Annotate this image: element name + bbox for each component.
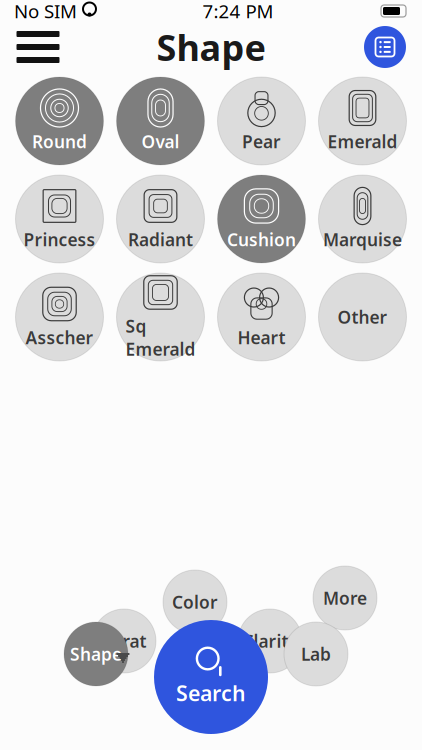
button[interactable]: Asscher (15, 273, 103, 361)
button[interactable]: Sq Emerald (116, 273, 204, 361)
button[interactable]: Color (163, 570, 227, 634)
staticText: Carat (101, 629, 146, 652)
button[interactable]: Emerald (318, 77, 406, 165)
button[interactable]: Oval (116, 77, 204, 165)
staticText: Search (176, 679, 246, 707)
button[interactable]: Shape (64, 622, 128, 686)
button[interactable]: Menu (14, 27, 62, 67)
staticText: Pear (242, 130, 281, 153)
staticText: Other (337, 305, 387, 328)
staticText: More (323, 586, 367, 609)
staticText: No SIM (14, 0, 77, 23)
button[interactable]: Carat (92, 609, 156, 673)
staticText: Shape (70, 642, 122, 665)
staticText: Cushion (227, 228, 296, 251)
staticText: Clarity (242, 629, 297, 652)
button[interactable]: Other (318, 273, 406, 361)
button[interactable]: Princess (15, 175, 103, 263)
staticText: Asscher (25, 326, 93, 349)
staticText: 7:24 PM (202, 0, 273, 23)
staticText: Heart (237, 326, 285, 349)
button[interactable]: Round (15, 77, 103, 165)
staticText: Princess (23, 228, 95, 251)
button[interactable]: Heart (217, 273, 305, 361)
staticText: Lab (301, 642, 331, 665)
button[interactable]: Lab (284, 622, 348, 686)
staticText: Shape (156, 23, 265, 71)
button[interactable]: List view (362, 24, 408, 70)
staticText: Sq Emerald (125, 314, 195, 360)
staticText: Oval (141, 130, 179, 153)
button[interactable]: More (313, 566, 377, 630)
staticText: Emerald (327, 130, 397, 153)
button[interactable]: Radiant (116, 175, 204, 263)
staticText: Radiant (128, 228, 193, 251)
button[interactable]: Marquise (318, 175, 406, 263)
staticText: Marquise (323, 228, 402, 251)
button[interactable]: Clarity (238, 609, 302, 673)
button[interactable]: Pear (217, 77, 305, 165)
staticText: Color (172, 590, 218, 613)
button[interactable]: Cushion (217, 175, 305, 263)
button[interactable]: Search (154, 620, 268, 734)
staticText: Round (32, 130, 87, 153)
